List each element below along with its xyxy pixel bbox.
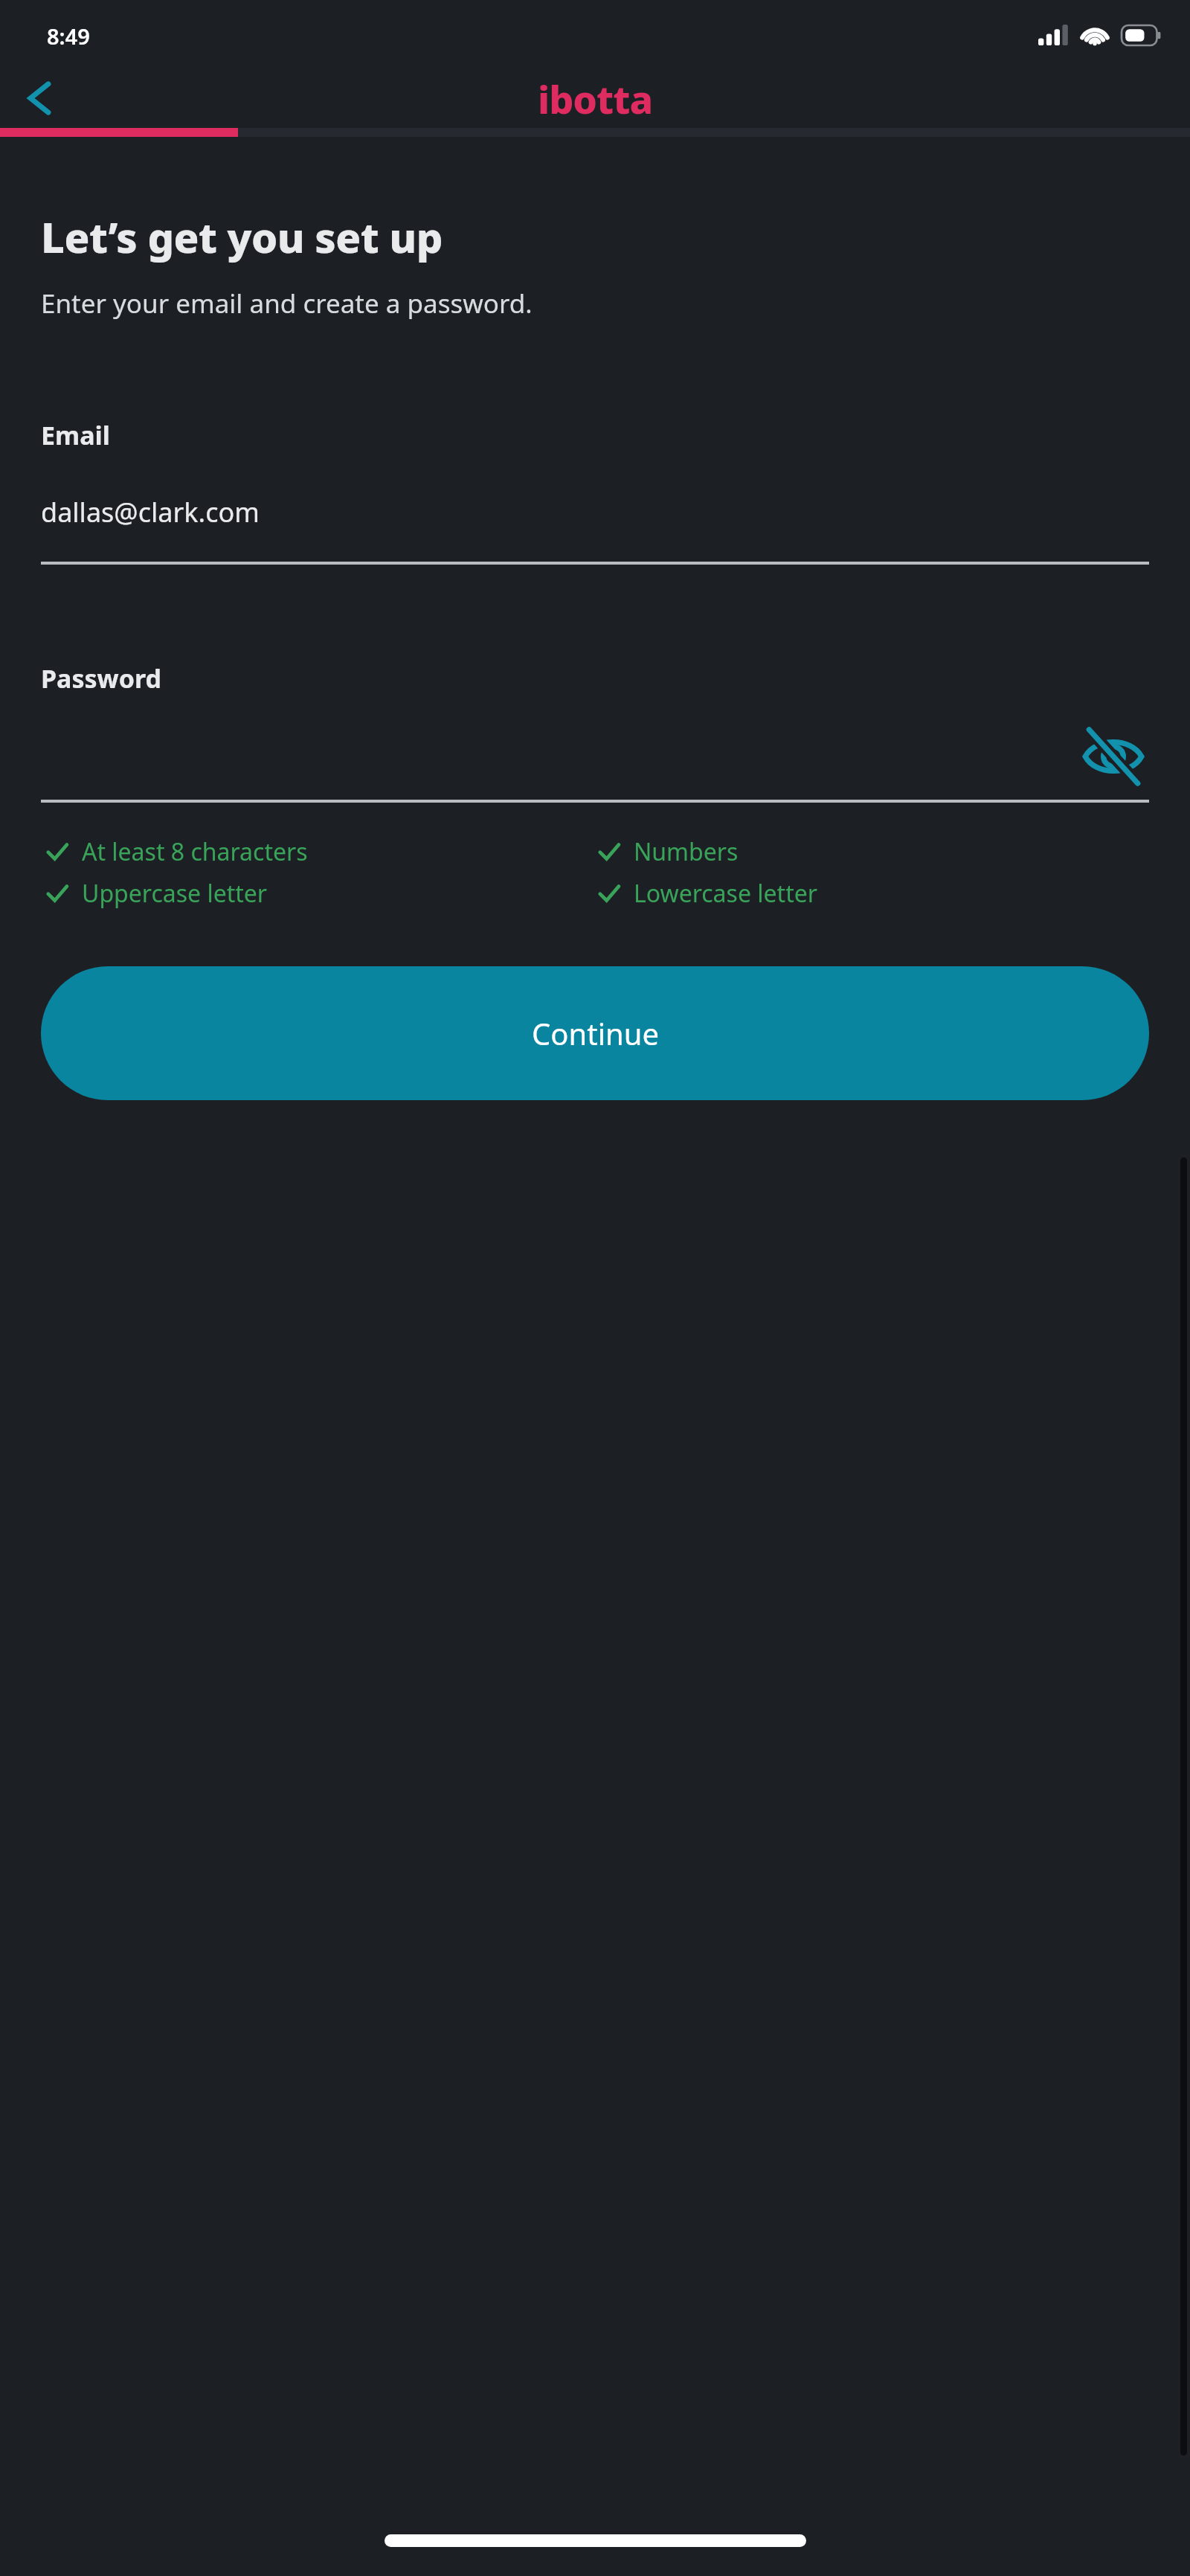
staticText: Let’s get you set up: [41, 208, 443, 265]
button[interactable]: Show password: [1078, 721, 1149, 792]
staticText: Enter your email and create a password.: [41, 286, 533, 321]
staticText: ibotta: [538, 72, 653, 125]
staticText: 8:49: [47, 22, 90, 51]
staticText: Password: [41, 661, 161, 696]
staticText: Numbers: [634, 835, 739, 868]
staticText: Continue: [532, 1013, 659, 1053]
button[interactable]: Back: [10, 69, 68, 127]
staticText: Email: [41, 418, 110, 452]
button[interactable]: Continue: [41, 966, 1149, 1100]
staticText: Uppercase letter: [82, 877, 268, 910]
button[interactable]: Show password: [41, 713, 1149, 800]
staticText: dallas@clark.com: [41, 494, 260, 530]
button[interactable]: dallas@clark.com: [41, 494, 1149, 565]
staticText: Lowercase letter: [634, 877, 817, 910]
staticText: At least 8 characters: [82, 835, 308, 868]
